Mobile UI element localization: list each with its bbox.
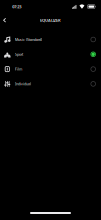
staticText: Individual: [15, 81, 31, 86]
button[interactable]: Sport: [0, 47, 101, 62]
staticText: Film: [15, 67, 22, 71]
staticText: 07:23: [12, 4, 21, 9]
staticText: Music (Standard): [15, 37, 42, 42]
button[interactable]: Film: [0, 62, 101, 76]
staticText: Sport: [15, 52, 23, 57]
staticText: EQUALIZER: [40, 17, 61, 23]
button[interactable]: Individual: [0, 76, 101, 91]
button[interactable]: Back: [0, 15, 10, 26]
button[interactable]: Music (Standard): [0, 32, 101, 47]
